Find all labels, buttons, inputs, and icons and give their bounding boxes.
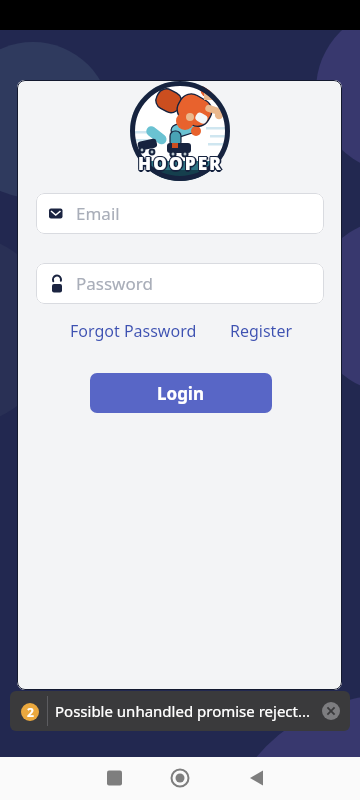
staticText: Password bbox=[76, 272, 153, 295]
button[interactable]: Password bbox=[36, 263, 324, 304]
button[interactable] bbox=[242, 764, 272, 794]
staticText: Login bbox=[157, 382, 205, 405]
button[interactable]: Register bbox=[230, 320, 293, 342]
staticText: Email bbox=[76, 202, 120, 225]
button[interactable]: 2 bbox=[10, 691, 350, 731]
staticText: HOOPER bbox=[137, 152, 222, 175]
staticText: Register bbox=[230, 320, 293, 342]
button[interactable] bbox=[322, 702, 340, 720]
staticText: 2 bbox=[27, 704, 34, 720]
staticText: HOOPER bbox=[139, 153, 224, 176]
button[interactable]: Email bbox=[36, 193, 324, 234]
staticText: HOOPER bbox=[138, 151, 223, 174]
button[interactable] bbox=[165, 764, 195, 794]
staticText: HOOPER bbox=[139, 151, 224, 174]
staticText: Possible unhandled promise reject... bbox=[55, 701, 311, 721]
button[interactable]: Login bbox=[90, 373, 272, 413]
staticText: HOOPER bbox=[138, 154, 223, 177]
staticText: HOOPER bbox=[140, 152, 225, 175]
staticText: Forgot Password bbox=[70, 320, 197, 342]
button[interactable] bbox=[100, 764, 130, 794]
staticText: HOOPER bbox=[137, 151, 222, 174]
staticText: HOOPER bbox=[138, 152, 223, 175]
staticText: HOOPER bbox=[137, 153, 222, 176]
button[interactable]: Forgot Password bbox=[70, 320, 197, 342]
